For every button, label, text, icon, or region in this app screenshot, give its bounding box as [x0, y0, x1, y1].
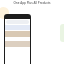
staticText: One App Plus All Products: [0, 1, 64, 5]
